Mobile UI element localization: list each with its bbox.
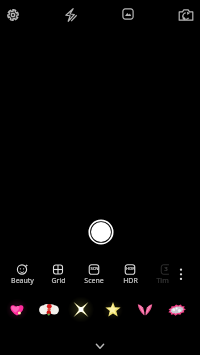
button[interactable]: 3 [148,259,169,287]
staticText: Grid [51,276,66,286]
button[interactable]: Wings sticker [129,293,161,325]
button[interactable]: Lips sticker [161,293,193,325]
staticText: Timer [156,276,169,286]
staticText: HDR [126,266,135,272]
staticText: HDR [123,276,138,286]
button[interactable]: Flash off [57,2,83,28]
button[interactable]: Switch camera [173,2,199,28]
button[interactable]: Aspect ratio [115,1,141,27]
button[interactable]: Grid [40,259,76,287]
button[interactable]: Flower sticker [33,293,65,325]
button[interactable]: More options [168,259,194,287]
button[interactable]: Star sticker [97,293,129,325]
button[interactable]: Collapse panel [0,324,200,355]
button[interactable]: Heart sticker [1,293,33,325]
button[interactable]: SCN [76,259,112,287]
staticText: Beauty [11,276,34,286]
button[interactable]: Shutter [87,218,115,246]
button[interactable]: Sparkle sticker [65,293,97,325]
staticText: Scene [84,276,104,286]
button[interactable]: Beauty [4,259,40,287]
button[interactable]: HDR [112,259,148,287]
staticText: SCN [90,266,99,272]
button[interactable]: Settings [0,2,26,28]
staticText: 3 [164,265,168,273]
